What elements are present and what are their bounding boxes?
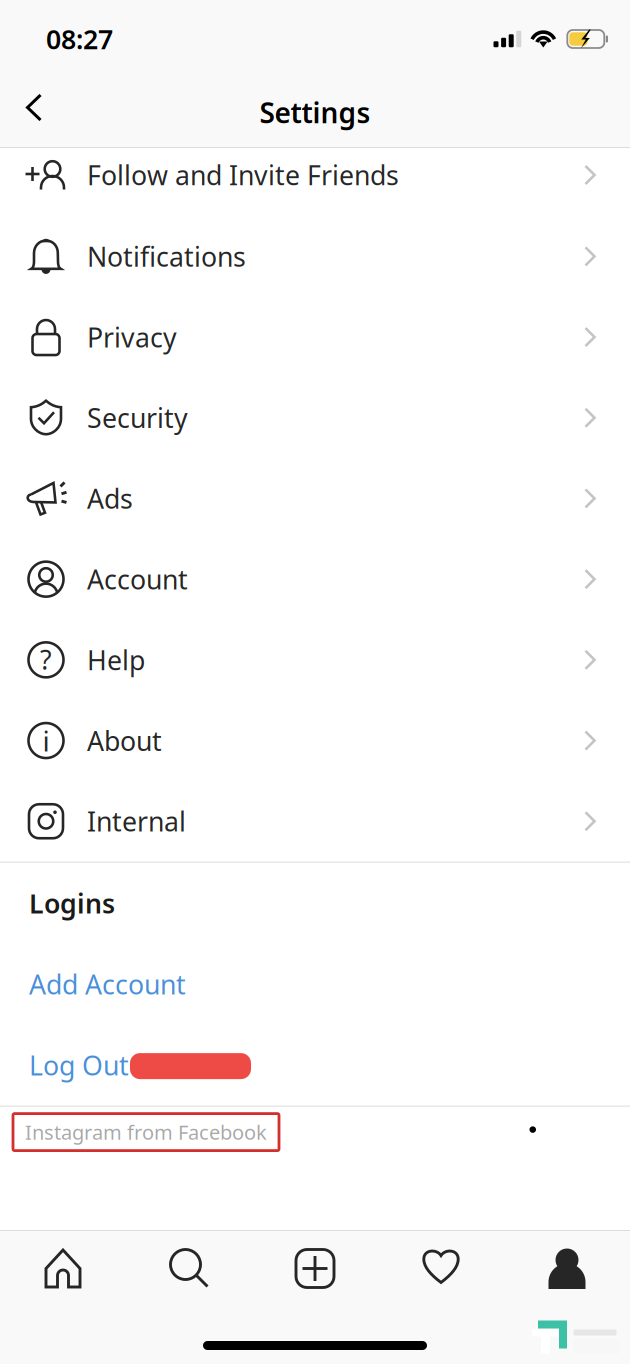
staticText: Logins <box>29 885 115 921</box>
button[interactable]: Privacy <box>0 297 630 377</box>
staticText: Log Out <box>29 1047 129 1083</box>
button[interactable]: Add Account <box>0 944 630 1025</box>
button[interactable]: Profile <box>504 1231 630 1311</box>
button[interactable]: Account <box>0 539 630 619</box>
button[interactable]: ? <box>0 619 630 700</box>
button[interactable]: Notifications <box>0 216 630 297</box>
staticText: i <box>42 722 49 759</box>
staticText: Settings <box>259 94 370 131</box>
button[interactable]: Security <box>0 377 630 458</box>
staticText: Security <box>87 400 188 435</box>
button[interactable]: New Post <box>252 1231 378 1311</box>
button[interactable]: Home <box>0 1231 126 1311</box>
staticText: Help <box>87 642 145 677</box>
button[interactable]: Ads <box>0 458 630 539</box>
button[interactable]: i <box>0 700 630 781</box>
staticText: Instagram from Facebook <box>25 1119 267 1145</box>
button[interactable]: Log Out <box>0 1025 630 1106</box>
button[interactable]: Follow and Invite Friends <box>0 148 630 216</box>
button[interactable]: Internal <box>0 781 630 862</box>
staticText: ? <box>40 642 52 677</box>
button[interactable]: Activity <box>378 1231 504 1311</box>
staticText: Notifications <box>87 239 246 274</box>
staticText: 08:27 <box>46 21 113 57</box>
staticText: Add Account <box>29 966 186 1002</box>
staticText: Ads <box>87 481 133 516</box>
button[interactable]: Search <box>126 1231 252 1311</box>
staticText: Internal <box>87 803 186 839</box>
staticText: Privacy <box>87 319 177 355</box>
staticText: Account <box>87 561 188 597</box>
button[interactable]: Back <box>10 78 58 147</box>
staticText: Follow and Invite Friends <box>87 157 399 193</box>
staticText: About <box>87 723 162 758</box>
